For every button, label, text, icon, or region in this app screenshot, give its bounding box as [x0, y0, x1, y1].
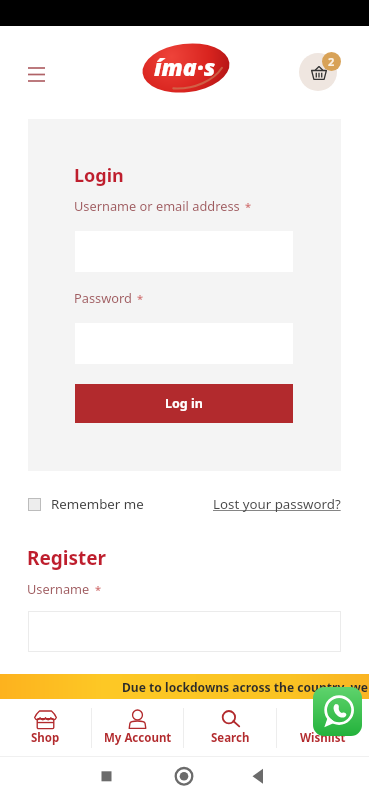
staticText: Shop: [31, 730, 60, 746]
staticText: Log in: [165, 395, 203, 412]
staticText: My Account: [104, 730, 172, 746]
staticText: Username or email address: [74, 197, 240, 214]
staticText: íma·s: [154, 51, 216, 82]
button[interactable]: My Account: [92, 699, 183, 757]
staticText: 2: [328, 54, 335, 69]
button[interactable]: Wishlist: [277, 699, 369, 757]
staticText: Password: [74, 289, 132, 306]
staticText: *: [137, 291, 144, 306]
button[interactable]: Log in: [75, 384, 293, 423]
button[interactable]: WhatsApp: [313, 687, 362, 736]
button[interactable]: Lost your password?: [213, 495, 341, 513]
staticText: Wishlist: [300, 730, 346, 746]
staticText: Username: [27, 580, 90, 597]
button[interactable]: Cart: [296, 48, 344, 96]
staticText: *: [245, 199, 252, 214]
staticText: Register: [27, 545, 107, 571]
button[interactable]: Remember me: [28, 495, 144, 513]
staticText: Login: [74, 163, 124, 188]
staticText: *: [95, 582, 102, 597]
button[interactable]: Shop: [0, 699, 91, 757]
button[interactable]: Menu: [20, 58, 53, 91]
staticText: Lost your password?: [213, 495, 341, 513]
staticText: Remember me: [51, 495, 144, 513]
staticText: Due to lockdowns across the country, we …: [122, 679, 369, 695]
staticText: Search: [211, 730, 250, 746]
button[interactable]: Search: [184, 699, 276, 757]
